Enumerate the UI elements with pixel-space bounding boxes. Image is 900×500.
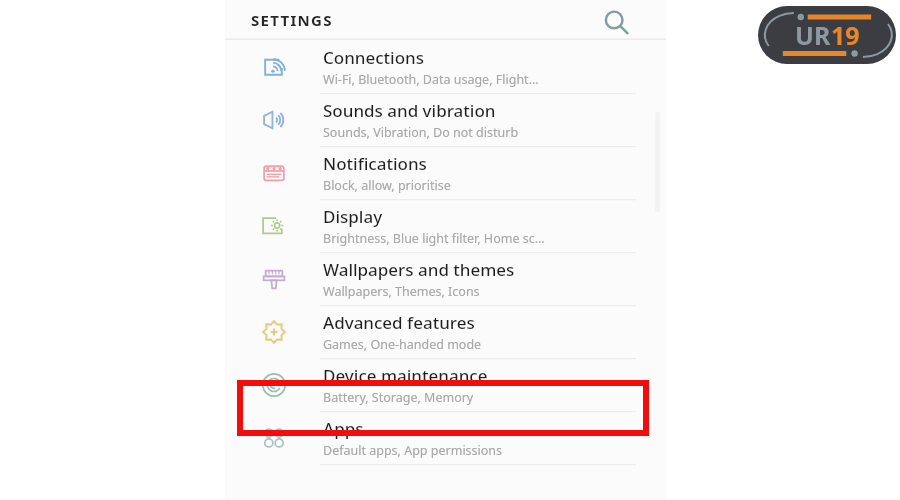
- staticText: Block, allow, prioritise: [323, 177, 451, 194]
- staticText: Sounds, Vibration, Do not disturb: [323, 124, 519, 141]
- staticText: Connections: [323, 46, 425, 69]
- staticText: SETTINGS: [251, 10, 333, 30]
- button[interactable]: Connections: [225, 40, 666, 93]
- staticText: Battery, Storage, Memory: [323, 389, 474, 406]
- button[interactable]: Apps: [225, 411, 666, 464]
- staticText: Wallpapers, Themes, Icons: [323, 283, 480, 300]
- button[interactable]: Sounds and vibration: [225, 93, 666, 146]
- button[interactable]: Display: [225, 199, 666, 252]
- staticText: UR: [795, 18, 831, 52]
- staticText: Device maintenance: [323, 364, 488, 387]
- button[interactable]: Wallpapers and themes: [225, 252, 666, 305]
- button[interactable]: Device maintenance: [225, 358, 666, 411]
- staticText: Notifications: [323, 152, 427, 175]
- staticText: Display: [323, 205, 383, 228]
- staticText: 19: [831, 18, 860, 52]
- staticText: Wallpapers and themes: [323, 258, 515, 281]
- staticText: Default apps, App permissions: [323, 442, 503, 459]
- button[interactable]: Notifications: [225, 146, 666, 199]
- staticText: Wi-Fi, Bluetooth, Data usage, Flight...: [323, 71, 539, 88]
- staticText: Games, One-handed mode: [323, 336, 482, 353]
- staticText: Advanced features: [323, 311, 475, 334]
- staticText: Apps: [323, 417, 364, 440]
- button[interactable]: Advanced features: [225, 305, 666, 358]
- staticText: Brightness, Blue light filter, Home sc..…: [323, 230, 545, 247]
- button[interactable]: Search: [596, 2, 636, 42]
- staticText: Sounds and vibration: [323, 99, 496, 122]
